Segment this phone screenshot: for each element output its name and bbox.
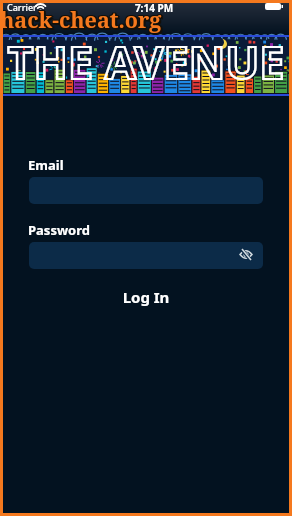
staticText: Log In xyxy=(116,287,176,307)
button[interactable] xyxy=(239,248,253,261)
staticText: hack-cheat.org xyxy=(0,5,162,34)
staticText: hack-cheat.org xyxy=(0,4,161,33)
staticText: THE AVENUE xyxy=(0,31,292,92)
staticText: Email xyxy=(28,156,64,174)
staticText: hack-cheat.org xyxy=(0,6,161,35)
staticText: hack-cheat.org xyxy=(1,4,163,33)
staticText: hack-cheat.org xyxy=(2,5,164,34)
staticText: hack-cheat.org xyxy=(1,6,163,35)
staticText: 7:14 PM xyxy=(8,1,292,15)
button[interactable] xyxy=(29,242,263,269)
staticText: hack-cheat.org xyxy=(0,7,162,36)
staticText: Password xyxy=(28,221,90,239)
staticText: Carrier xyxy=(7,1,37,13)
button[interactable]: Log In xyxy=(116,287,176,309)
staticText: hack-cheat.org xyxy=(2,7,164,36)
